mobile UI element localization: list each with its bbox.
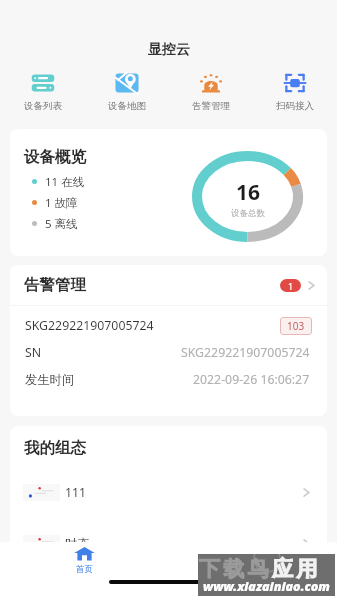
staticText: SKG229221907005724 <box>25 317 154 334</box>
other: 设备地图 <box>115 71 139 95</box>
button[interactable]: 扫码接入 <box>253 60 337 112</box>
staticText: 16 <box>236 178 261 207</box>
button[interactable]: 设备地图 <box>85 60 169 112</box>
staticText: SKG229221907005724 <box>181 344 310 361</box>
other: 扫码接入 <box>283 71 307 95</box>
button[interactable]: 告警管理 <box>169 60 253 112</box>
staticText: 告警管理 <box>192 100 230 112</box>
staticText: 1 <box>288 280 294 292</box>
other: 告警管理 <box>199 71 223 95</box>
staticText: 应用 <box>272 556 321 582</box>
button[interactable]: 111 <box>10 467 327 518</box>
staticText: 111 <box>65 484 87 501</box>
other: 首页 <box>74 546 95 561</box>
staticText: 扫码接入 <box>276 100 314 112</box>
staticText: 1 故障 <box>45 195 78 211</box>
staticText: 首页 <box>76 564 93 575</box>
staticText: 下载鸟 <box>199 556 272 582</box>
staticText: 103 <box>287 319 305 333</box>
button[interactable]: 首页 <box>64 546 104 575</box>
staticText: 告警管理 <box>24 275 86 295</box>
staticText: 设备概览 <box>24 147 86 167</box>
other: 设备列表 <box>31 71 55 95</box>
button[interactable]: 告警管理 <box>10 265 327 305</box>
staticText: 时态 <box>65 536 90 551</box>
button[interactable]: 设备列表 <box>0 60 85 112</box>
staticText: www.xiazainiao.com <box>203 578 330 595</box>
staticText: 5 离线 <box>45 216 78 232</box>
staticText: 设备列表 <box>24 100 62 112</box>
staticText: 我的组态 <box>24 438 86 458</box>
staticText: 设备总数 <box>231 208 265 219</box>
staticText: 11 在线 <box>45 174 85 190</box>
staticText: 显控云 <box>148 41 190 59</box>
button[interactable]: 时态 <box>10 518 327 569</box>
staticText: 设备地图 <box>108 100 146 112</box>
staticText: 2022-09-26 16:06:27 <box>193 371 310 388</box>
staticText: 发生时间 <box>25 372 75 387</box>
staticText: SN <box>25 344 42 361</box>
